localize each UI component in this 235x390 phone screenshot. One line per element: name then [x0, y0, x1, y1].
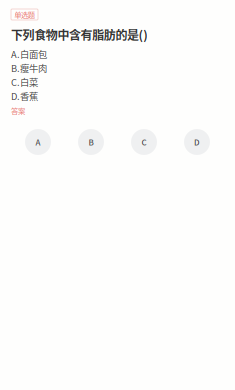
staticText: B.瘦牛肉 [11, 63, 47, 73]
staticText: 下列食物中含有脂肪的是() [11, 28, 148, 41]
staticText: D [194, 137, 200, 146]
button[interactable]: A.白面包 [11, 47, 47, 61]
button[interactable]: C.白菜 [11, 75, 38, 89]
staticText: 答案 [11, 106, 25, 115]
staticText: C [141, 137, 146, 146]
button[interactable]: Choose C [131, 129, 157, 155]
staticText: 单选题 [14, 10, 35, 19]
staticText: A.白面包 [11, 49, 47, 59]
button[interactable]: D.香蕉 [11, 89, 38, 103]
staticText: D.香蕉 [11, 91, 38, 101]
staticText: A [35, 137, 40, 146]
button[interactable]: Choose B [78, 129, 104, 155]
staticText: C.白菜 [11, 77, 38, 87]
button[interactable]: Choose A [25, 129, 51, 155]
button[interactable]: Choose D [184, 129, 210, 155]
button[interactable]: B.瘦牛肉 [11, 61, 47, 75]
staticText: B [88, 137, 93, 146]
